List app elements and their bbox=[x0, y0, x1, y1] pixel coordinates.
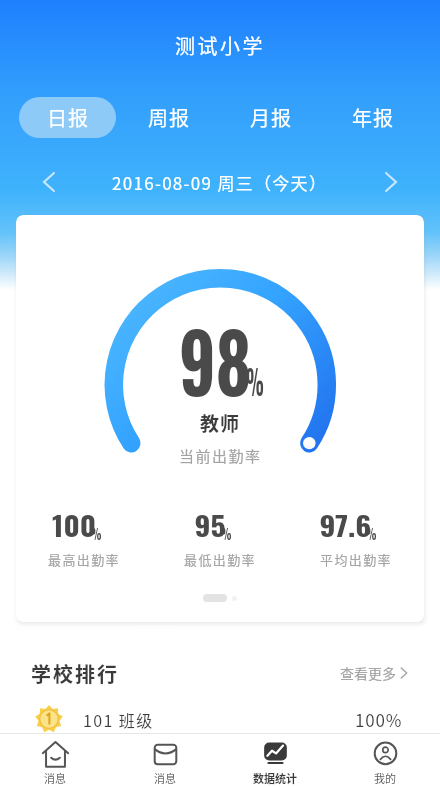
staticText: 月报 bbox=[250, 103, 292, 132]
staticText: % bbox=[221, 522, 232, 544]
button[interactable]: 查看更多 bbox=[338, 657, 412, 689]
button[interactable]: 我的 bbox=[330, 736, 440, 786]
staticText: 数据统计 bbox=[253, 770, 297, 786]
button[interactable]: 年报 bbox=[324, 97, 421, 138]
button[interactable]: Previous day bbox=[34, 167, 64, 197]
staticText: 教师 bbox=[200, 409, 241, 437]
staticText: 100 bbox=[52, 505, 97, 545]
staticText: 平均出勤率 bbox=[320, 550, 393, 569]
staticText: % bbox=[246, 357, 264, 406]
staticText: 97.6 bbox=[320, 505, 372, 545]
staticText: 消息 bbox=[154, 770, 176, 786]
staticText: 我的 bbox=[374, 770, 396, 786]
staticText: 最低出勤率 bbox=[184, 550, 257, 569]
staticText: 周报 bbox=[148, 103, 190, 132]
button[interactable]: 月报 bbox=[222, 97, 319, 138]
staticText: 消息 bbox=[44, 770, 66, 786]
staticText: 当前出勤率 bbox=[179, 445, 262, 467]
staticText: 年报 bbox=[352, 103, 394, 132]
staticText: 101 班级 bbox=[83, 708, 154, 731]
staticText: 学校排行 bbox=[31, 659, 119, 688]
staticText: 100% bbox=[355, 707, 403, 732]
staticText: % bbox=[366, 522, 377, 544]
staticText: 日报 bbox=[47, 103, 89, 132]
button[interactable]: Next day bbox=[376, 167, 406, 197]
button[interactable]: 消息 bbox=[0, 736, 110, 786]
staticText: 测试小学 bbox=[175, 31, 265, 60]
button[interactable]: 消息 bbox=[110, 736, 220, 786]
staticText: 2016-08-09 周三（今天） bbox=[112, 170, 328, 195]
staticText: 98 bbox=[179, 299, 252, 419]
button[interactable]: 日报 bbox=[19, 97, 116, 138]
staticText: 查看更多 bbox=[340, 663, 396, 683]
staticText: % bbox=[91, 522, 102, 544]
staticText: 95 bbox=[195, 505, 226, 545]
button[interactable]: 数据统计 bbox=[220, 736, 330, 786]
staticText: 最高出勤率 bbox=[48, 550, 121, 569]
button[interactable]: 101 班级 bbox=[0, 700, 440, 738]
button[interactable]: 周报 bbox=[120, 97, 217, 138]
